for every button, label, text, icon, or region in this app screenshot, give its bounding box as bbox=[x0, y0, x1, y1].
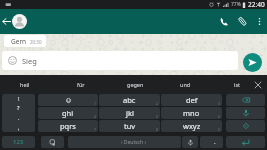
button[interactable]: wxyz bbox=[161, 120, 222, 132]
staticText: 123 bbox=[13, 138, 24, 146]
staticText: 1 bbox=[94, 101, 97, 106]
button[interactable]: ghi bbox=[38, 107, 98, 119]
staticText: tuv bbox=[124, 121, 136, 131]
staticText: wxyz bbox=[183, 121, 201, 131]
button[interactable]: def bbox=[161, 94, 222, 106]
staticText: mno bbox=[183, 108, 200, 118]
button[interactable]: gegen bbox=[111, 75, 159, 94]
button[interactable]: ‹ Deutsch › bbox=[68, 136, 181, 148]
staticText: 5 bbox=[156, 114, 159, 119]
staticText: pqrs bbox=[60, 121, 76, 131]
button[interactable]: Stickers bbox=[41, 136, 64, 148]
button[interactable]: More options bbox=[252, 9, 267, 34]
button[interactable]: Profile photo bbox=[12, 14, 27, 29]
staticText: 7 bbox=[94, 127, 97, 132]
button[interactable]: Sieg bbox=[2, 51, 238, 70]
staticText: 3 bbox=[218, 101, 221, 106]
button[interactable]: pqrs bbox=[38, 120, 98, 132]
button[interactable]: ! bbox=[2, 94, 35, 132]
button[interactable]: Voice input bbox=[182, 136, 198, 148]
staticText: ‹ Deutsch › bbox=[121, 139, 146, 146]
button[interactable]: 123 bbox=[2, 136, 35, 148]
staticText: , bbox=[18, 124, 20, 131]
button[interactable]: 1 bbox=[38, 94, 98, 106]
staticText: abc bbox=[123, 95, 136, 105]
button[interactable]: Voice input bbox=[226, 107, 265, 119]
button[interactable]: Enter bbox=[226, 136, 265, 148]
staticText: 9 bbox=[218, 127, 221, 132]
staticText: 6 bbox=[218, 114, 221, 119]
staticText: ist bbox=[234, 81, 241, 88]
button[interactable]: für bbox=[57, 75, 105, 94]
staticText: 20:30 bbox=[30, 39, 42, 45]
staticText: 22:40 bbox=[248, 0, 265, 9]
button[interactable]: mno bbox=[161, 107, 222, 119]
button[interactable]: Call bbox=[214, 9, 233, 34]
button[interactable]: und bbox=[161, 75, 209, 94]
button[interactable]: abc bbox=[99, 94, 160, 106]
button[interactable]: Dismiss suggestions bbox=[248, 75, 267, 94]
staticText: 77% bbox=[231, 1, 241, 8]
staticText: und bbox=[180, 81, 191, 88]
button[interactable]: . bbox=[200, 136, 223, 148]
staticText: 2 bbox=[156, 101, 159, 106]
button[interactable]: Emoji bbox=[226, 120, 265, 132]
button[interactable]: Attach bbox=[233, 9, 252, 34]
staticText: heil bbox=[20, 81, 30, 88]
button[interactable]: tuv bbox=[99, 120, 160, 132]
button[interactable]: Backspace bbox=[226, 94, 265, 106]
staticText: Gern bbox=[11, 37, 27, 46]
staticText: Sieg bbox=[22, 56, 37, 66]
staticText: ! bbox=[18, 95, 20, 102]
staticText: 4 bbox=[94, 114, 97, 119]
staticText: . bbox=[214, 138, 216, 146]
staticText: . bbox=[18, 114, 20, 121]
button[interactable]: Send bbox=[243, 53, 262, 72]
button[interactable]: heil bbox=[1, 75, 49, 94]
button[interactable]: jkl bbox=[99, 107, 160, 119]
staticText: ghi bbox=[62, 108, 74, 118]
button[interactable]: Gern bbox=[4, 35, 46, 47]
staticText: 8 bbox=[156, 127, 159, 132]
staticText: def bbox=[186, 95, 198, 105]
button[interactable]: Back bbox=[0, 9, 12, 34]
staticText: für bbox=[77, 81, 85, 88]
button[interactable]: ist bbox=[213, 75, 261, 94]
staticText: gegen bbox=[127, 81, 144, 88]
staticText: jkl bbox=[126, 108, 134, 118]
staticText: ? bbox=[17, 104, 20, 111]
